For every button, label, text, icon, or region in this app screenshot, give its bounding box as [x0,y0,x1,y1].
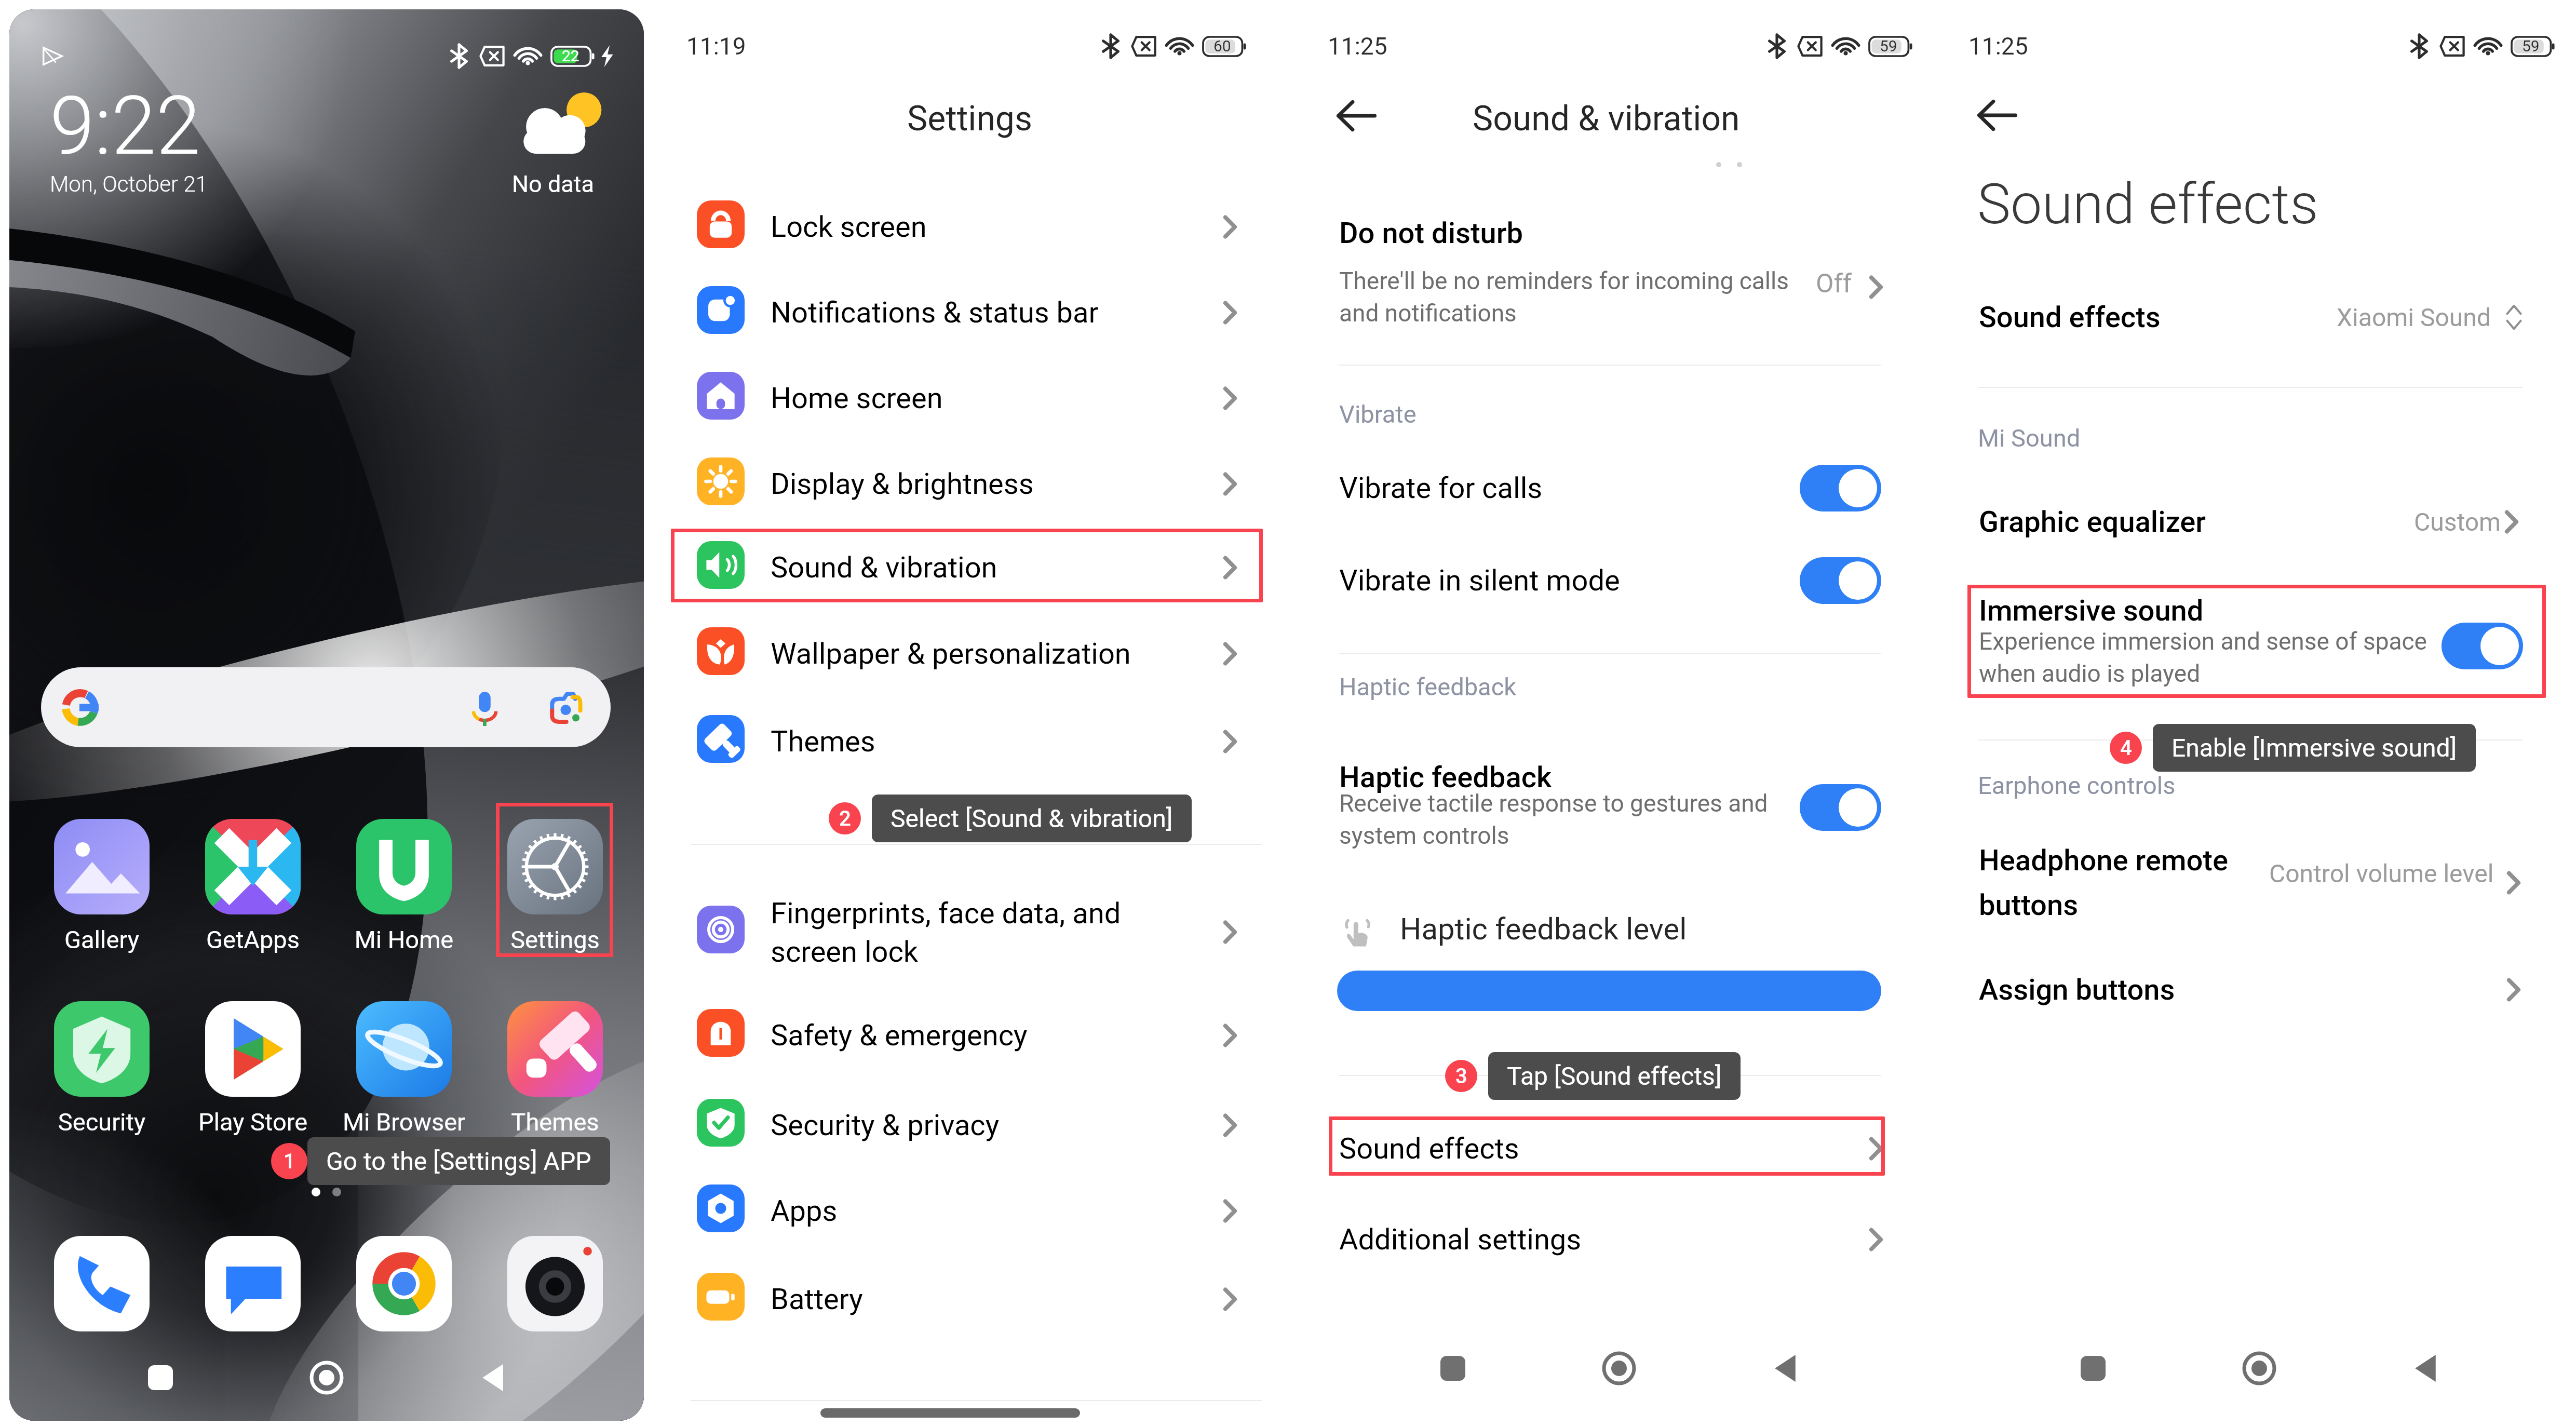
staticText: Haptic feedback [1339,760,1552,795]
button[interactable]: Recents [2010,1329,2176,1407]
button[interactable]: Toggle [2442,623,2523,669]
button[interactable]: Haptic feedback [1301,748,1937,867]
button[interactable]: Messages [205,1236,301,1331]
staticText: Haptic feedback level [1400,911,1687,947]
staticText: Sound effects [1979,300,2161,334]
button[interactable]: Home [1536,1329,1702,1407]
staticText: Security & privacy [771,1108,1000,1142]
button[interactable]: Mi Home [356,819,452,914]
button[interactable]: Assign buttons [1942,953,2576,1026]
staticText: Sound & vibration [1473,99,1740,139]
staticText: Sound effects [1977,171,2318,237]
staticText: GetApps [177,925,329,954]
button[interactable]: Chrome [356,1236,452,1331]
button[interactable]: Search [41,667,611,747]
staticText: Lock screen [771,210,927,244]
button[interactable]: GetApps [205,819,301,914]
staticText: Themes [479,1108,631,1136]
staticText: 2 [839,806,851,831]
button[interactable]: Fingerprints, face data, and screen lock [659,880,1298,984]
staticText: Mon, October 21 [50,171,208,197]
button[interactable]: Settings [507,819,603,914]
button[interactable]: Apps [659,1168,1298,1254]
staticText: 11:25 [1968,32,2028,60]
staticText: Settings [907,99,1032,139]
staticText: Settings [479,925,631,954]
staticText: Gallery [25,925,178,954]
button[interactable]: Back [410,1339,576,1417]
staticText: No data [512,170,594,198]
button[interactable]: Security [54,1001,150,1097]
button[interactable]: Mi Browser [356,1001,452,1097]
staticText: Go to the [Settings] APP [326,1147,591,1176]
button[interactable]: Notifications & status bar [659,270,1298,355]
button[interactable]: Back [2342,1329,2508,1407]
button[interactable]: Immersive sound [1942,585,2576,698]
staticText: Vibrate for calls [1339,471,1543,505]
staticText: Fingerprints, face data, and screen lock [771,896,1121,968]
button[interactable]: Toggle [1800,557,1881,604]
staticText: Apps [771,1194,838,1228]
button[interactable]: Home screen [659,356,1298,441]
button[interactable]: Do not disturb [1301,197,1937,353]
staticText: 3 [1455,1064,1467,1088]
button[interactable]: Wallpaper & personalization [659,611,1298,696]
staticText: Tap [Sound effects] [1507,1061,1722,1091]
button[interactable]: Home [2176,1329,2342,1407]
button[interactable]: Vibrate in silent mode [1301,544,1937,617]
button[interactable]: Graphic equalizer [1942,486,2576,558]
staticText: Mi Sound [1978,424,2081,452]
staticText: 11:25 [1328,32,1387,60]
staticText: 22 [562,47,579,65]
button[interactable]: Sound effects [1942,281,2576,354]
staticText: Haptic feedback [1339,672,1517,701]
staticText: Xiaomi Sound [2337,303,2491,332]
button[interactable]: Recents [77,1339,244,1417]
button[interactable]: Security & privacy [659,1083,1298,1168]
staticText: Vibrate [1339,400,1417,428]
button[interactable]: Camera [507,1236,603,1331]
button[interactable]: Sound & vibration [659,525,1298,610]
button[interactable]: Recents [1370,1329,1536,1407]
button[interactable]: Headphone remote buttons [1942,831,2576,935]
button[interactable]: Themes [659,699,1298,784]
staticText: Graphic equalizer [1979,505,2206,539]
button[interactable]: Sound effects [1301,1112,1937,1185]
staticText: Assign buttons [1979,973,2175,1007]
staticText: 9:22 [50,79,201,173]
button[interactable]: Display & brightness [659,441,1298,527]
staticText: Receive tactile response to gestures and… [1339,789,1768,850]
staticText: 60 [1213,37,1231,55]
button[interactable]: Additional settings [1301,1203,1937,1276]
button[interactable]: Toggle [1800,465,1881,511]
staticText: Control volume level [2269,859,2494,888]
staticText: 4 [2120,736,2132,760]
staticText: There'll be no reminders for incoming ca… [1339,267,1789,327]
staticText: Experience immersion and sense of space … [1979,627,2427,688]
button[interactable]: Lock screen [659,184,1298,270]
staticText: Additional settings [1339,1222,1582,1257]
button[interactable]: Back [1971,89,2022,141]
button[interactable]: Safety & emergency [659,993,1298,1078]
button[interactable]: Play Store [205,1001,301,1097]
staticText: Headphone remote buttons [1979,843,2229,922]
button[interactable]: Back [1330,90,1382,142]
staticText: Select [Sound & vibration] [891,804,1173,833]
button[interactable]: Themes [507,1001,603,1097]
staticText: Display & brightness [771,467,1034,501]
button[interactable]: Home [244,1339,410,1417]
staticText: 59 [1880,37,1897,55]
staticText: Themes [771,724,875,759]
staticText: Mi Home [328,925,480,954]
button[interactable]: Phone [54,1236,150,1331]
button[interactable]: Battery [659,1257,1298,1342]
button[interactable]: Gallery [54,819,150,914]
staticText: Notifications & status bar [771,295,1099,330]
button[interactable]: Back [1702,1329,1868,1407]
staticText: Wallpaper & personalization [771,637,1131,671]
staticText: Immersive sound [1979,594,2204,628]
staticText: Enable [Immersive sound] [2172,733,2457,762]
button[interactable]: Vibrate for calls [1301,452,1937,524]
staticText: Off [1816,268,1852,299]
button[interactable]: Toggle [1800,784,1881,831]
